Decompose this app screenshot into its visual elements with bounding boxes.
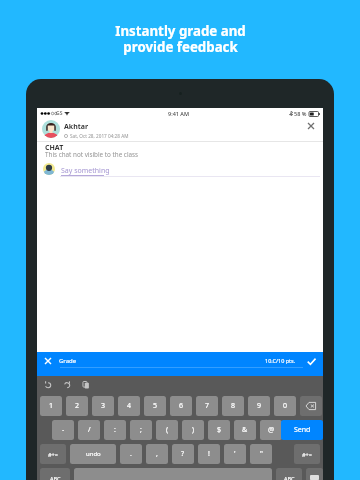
button[interactable]: Send <box>281 420 323 440</box>
staticText: : <box>114 425 116 435</box>
button[interactable]: / <box>78 420 100 440</box>
button[interactable]: undo <box>70 444 116 464</box>
button[interactable]: 8 <box>222 396 244 416</box>
button[interactable]: Backspace <box>300 396 322 416</box>
button[interactable]: #+= <box>294 444 320 464</box>
button[interactable]: ! <box>198 444 220 464</box>
staticText: " <box>260 449 263 459</box>
staticText: ! <box>208 449 210 459</box>
button[interactable]: Confirm grade <box>304 354 318 368</box>
staticText: & <box>242 425 248 435</box>
staticText: Instantly grade and <box>115 22 246 40</box>
staticText: ) <box>192 425 195 435</box>
staticText: #+= <box>302 451 312 458</box>
staticText: , <box>156 449 158 459</box>
button[interactable]: ) <box>182 420 204 440</box>
staticText: Sat, Oct 28, 2017 04:28 AM <box>70 133 129 139</box>
staticText: 4 <box>127 401 132 411</box>
button[interactable]: @ <box>260 420 282 440</box>
button[interactable]: ABC <box>276 468 302 480</box>
staticText: Send <box>294 425 311 435</box>
staticText: Akhtar <box>64 122 89 132</box>
button[interactable]: #+= <box>40 444 66 464</box>
button[interactable]: ; <box>130 420 152 440</box>
staticText: This chat not visible to the class <box>45 150 139 159</box>
staticText: 10.C/10 pts. <box>265 357 296 364</box>
button[interactable]: - <box>52 420 74 440</box>
staticText: 9 <box>257 401 262 411</box>
staticText: ' <box>234 449 236 459</box>
staticText: 58 % <box>294 110 307 117</box>
button[interactable]: Undo <box>41 378 54 391</box>
staticText: ; <box>140 425 142 435</box>
staticText: $ <box>217 425 222 435</box>
staticText: 2 <box>75 401 80 411</box>
staticText: 0 <box>283 401 288 411</box>
staticText: ABC <box>284 475 295 480</box>
button[interactable]: ' <box>224 444 246 464</box>
button[interactable]: 9 <box>248 396 270 416</box>
staticText: GS <box>56 110 63 117</box>
button[interactable]: 4 <box>118 396 140 416</box>
staticText: 1 <box>49 401 54 411</box>
staticText: ABC <box>50 475 61 480</box>
button[interactable]: 0 <box>274 396 296 416</box>
button[interactable]: & <box>234 420 256 440</box>
staticText: @ <box>268 425 275 435</box>
button[interactable]: 1 <box>40 396 62 416</box>
staticText: ? <box>181 449 185 459</box>
button[interactable]: Redo <box>60 378 73 391</box>
button[interactable]: ABC <box>40 468 70 480</box>
staticText: Grade <box>59 357 77 365</box>
button[interactable]: . <box>120 444 142 464</box>
button[interactable]: 3 <box>92 396 114 416</box>
button[interactable]: " <box>250 444 272 464</box>
staticText: 7 <box>205 401 210 411</box>
staticText: #+= <box>48 451 58 458</box>
staticText: Say something <box>61 166 110 176</box>
button[interactable]: Close grade <box>42 355 54 367</box>
button[interactable]: 7 <box>196 396 218 416</box>
staticText: undo <box>86 450 101 458</box>
button[interactable]: Hide keyboard <box>306 468 323 480</box>
button[interactable]: 5 <box>144 396 166 416</box>
button[interactable]: $ <box>208 420 230 440</box>
staticText: . <box>130 449 132 459</box>
button[interactable]: 6 <box>170 396 192 416</box>
staticText: CHAT <box>45 143 64 153</box>
button[interactable]: ? <box>172 444 194 464</box>
button[interactable]: ( <box>156 420 178 440</box>
button[interactable]: Copy <box>79 378 92 391</box>
staticText: 8 <box>231 401 236 411</box>
staticText: ( <box>166 425 169 435</box>
staticText: - <box>62 425 65 435</box>
staticText: 3 <box>101 401 106 411</box>
staticText: provide feedback <box>123 38 238 56</box>
staticText: / <box>88 425 91 435</box>
staticText: 9:41 AM <box>168 110 190 117</box>
button[interactable]: , <box>146 444 168 464</box>
button[interactable]: : <box>104 420 126 440</box>
staticText: 6 <box>179 401 184 411</box>
staticText: 5 <box>153 401 158 411</box>
button[interactable]: 2 <box>66 396 88 416</box>
button[interactable]: Close <box>303 118 319 134</box>
